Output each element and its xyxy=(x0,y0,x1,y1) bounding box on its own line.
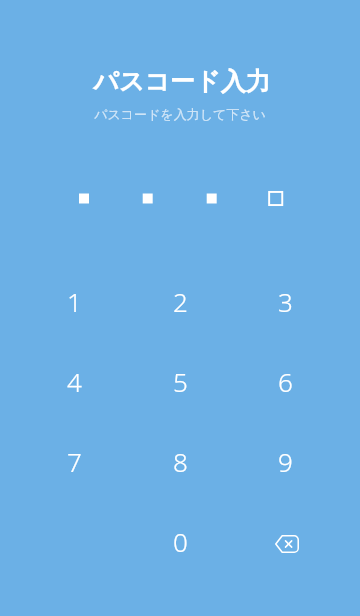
staticText: 5 xyxy=(173,364,188,399)
button[interactable]: 9 xyxy=(247,433,323,489)
staticText: パスコードを入力して下さい xyxy=(0,106,360,122)
button[interactable]: 4 xyxy=(36,353,112,409)
staticText: 1 xyxy=(67,284,82,319)
staticText: 9 xyxy=(278,444,293,479)
staticText: 8 xyxy=(173,444,188,479)
staticText: 2 xyxy=(173,284,188,319)
staticText: パスコード入力 xyxy=(2,66,360,97)
staticText: 4 xyxy=(67,364,82,399)
button[interactable]: 5 xyxy=(142,353,218,409)
staticText: 6 xyxy=(278,364,293,399)
button[interactable]: 7 xyxy=(36,433,112,489)
staticText: 0 xyxy=(173,524,188,559)
button[interactable]: 3 xyxy=(247,273,323,329)
button[interactable]: 1 xyxy=(36,273,112,329)
button[interactable]: 6 xyxy=(247,353,323,409)
button[interactable]: 2 xyxy=(142,273,218,329)
button[interactable]: 0 xyxy=(142,513,218,569)
button[interactable]: Delete last digit xyxy=(249,516,325,572)
staticText: 3 xyxy=(278,284,293,319)
button[interactable]: 8 xyxy=(142,433,218,489)
staticText: 7 xyxy=(67,444,82,479)
